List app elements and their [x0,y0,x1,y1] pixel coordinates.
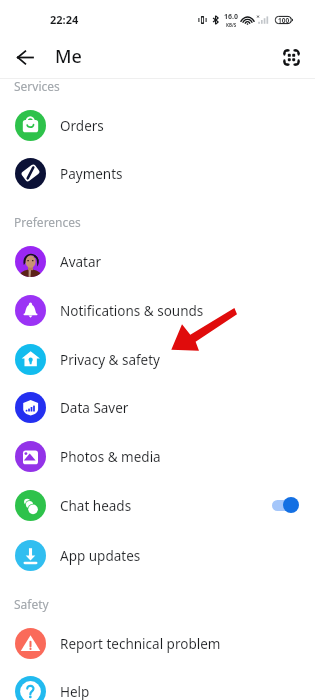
button[interactable]: Report technical problem [0,619,315,668]
staticText: Report technical problem [60,635,221,653]
button[interactable]: Payments [0,149,315,198]
button[interactable]: Scan QR code [276,42,306,72]
button[interactable]: Avatar [0,237,315,286]
staticText: Notifications & sounds [60,302,204,320]
staticText: Services [14,78,60,94]
staticText: Orders [60,117,104,135]
button[interactable]: Privacy & safety [0,335,315,384]
button[interactable]: Data Saver [0,383,315,432]
staticText: 100 [278,16,290,25]
button[interactable]: Photos & media [0,432,315,481]
staticText: App updates [60,547,141,565]
button[interactable]: Chat heads [0,481,315,530]
staticText: Safety [14,596,49,612]
staticText: Preferences [14,214,81,230]
staticText: KB/S [226,22,237,28]
staticText: Data Saver [60,399,129,417]
staticText: Chat heads [60,497,132,515]
staticText: 16.0 [224,12,238,22]
staticText: Payments [60,165,123,183]
staticText: Me [55,44,82,69]
staticText: 22:24 [50,12,79,27]
button[interactable]: Back [10,42,40,72]
button[interactable]: Help [0,667,315,700]
staticText: Privacy & safety [60,351,160,369]
button[interactable]: App updates [0,531,315,580]
button[interactable]: Notifications & sounds [0,286,315,335]
staticText: Avatar [60,253,102,271]
staticText: Photos & media [60,448,161,466]
staticText: Help [60,683,90,700]
button[interactable]: Orders [0,101,315,150]
